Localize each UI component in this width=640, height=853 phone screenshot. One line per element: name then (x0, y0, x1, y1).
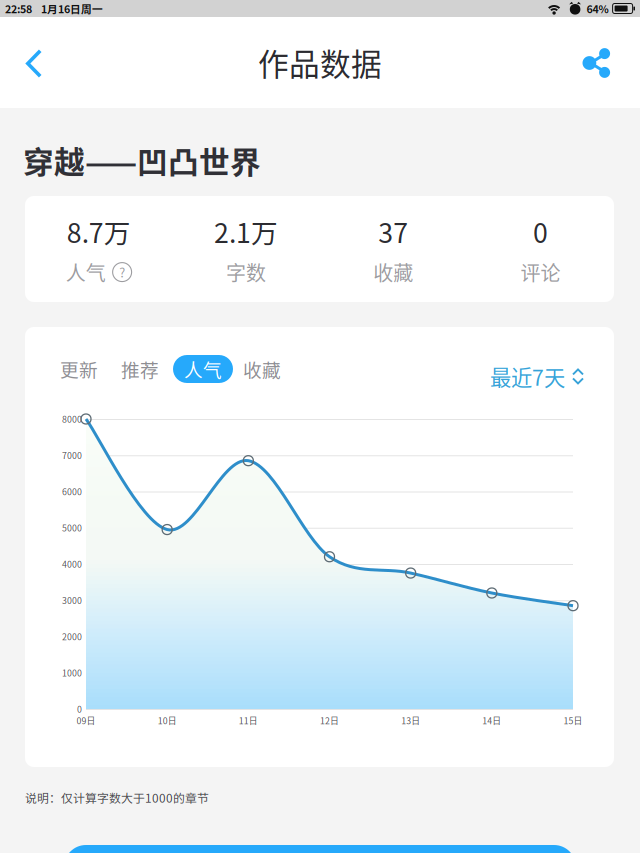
staticText: 7000 (62, 449, 82, 462)
staticText: 14日 (482, 714, 501, 727)
staticText: 64% (587, 1, 609, 16)
button[interactable]: 最近7天 (484, 355, 591, 398)
staticText: 22:58 (5, 1, 32, 16)
staticText: 作品数据 (258, 40, 382, 85)
button[interactable]: 收藏 (232, 355, 292, 383)
staticText: 0 (533, 212, 548, 251)
staticText: 人气 (66, 258, 106, 287)
staticText: 8.7万 (67, 212, 131, 251)
button[interactable]: 人气 (173, 355, 233, 383)
staticText: 1000 (62, 666, 82, 679)
staticText: 推荐 (121, 355, 159, 382)
button[interactable]: 更新 (49, 355, 109, 383)
staticText: ? (119, 263, 125, 281)
button[interactable]: Back (8, 27, 60, 100)
staticText: 11日 (239, 714, 258, 727)
staticText: 评论 (520, 258, 560, 287)
staticText: 5000 (62, 521, 82, 534)
staticText: 37 (378, 212, 408, 251)
staticText: 收藏 (243, 355, 281, 382)
staticText: 4000 (62, 558, 82, 570)
staticText: 3000 (62, 594, 82, 607)
staticText: 说明：仅计算字数大于1000的章节 (25, 789, 209, 806)
staticText: 最近7天 (490, 361, 565, 392)
staticText: 1月16日周一 (41, 1, 103, 16)
staticText: 收藏 (373, 258, 413, 287)
staticText: 10日 (158, 714, 177, 727)
button[interactable]: 立即开始 (64, 845, 576, 853)
staticText: 0 (77, 703, 82, 715)
button[interactable]: 推荐 (110, 355, 170, 383)
staticText: 更新 (60, 355, 98, 382)
staticText: 8000 (62, 413, 82, 425)
staticText: 2.1万 (214, 212, 278, 251)
staticText: 09日 (76, 714, 95, 727)
staticText: 12日 (320, 714, 339, 727)
staticText: 2000 (62, 630, 82, 643)
staticText: 13日 (401, 714, 420, 727)
button[interactable]: Share (562, 27, 630, 99)
staticText: 15日 (563, 714, 582, 727)
staticText: 穿越——凹凸世界 (23, 138, 261, 182)
staticText: 字数 (226, 258, 266, 287)
staticText: 人气 (184, 355, 222, 382)
staticText: 6000 (62, 485, 82, 498)
